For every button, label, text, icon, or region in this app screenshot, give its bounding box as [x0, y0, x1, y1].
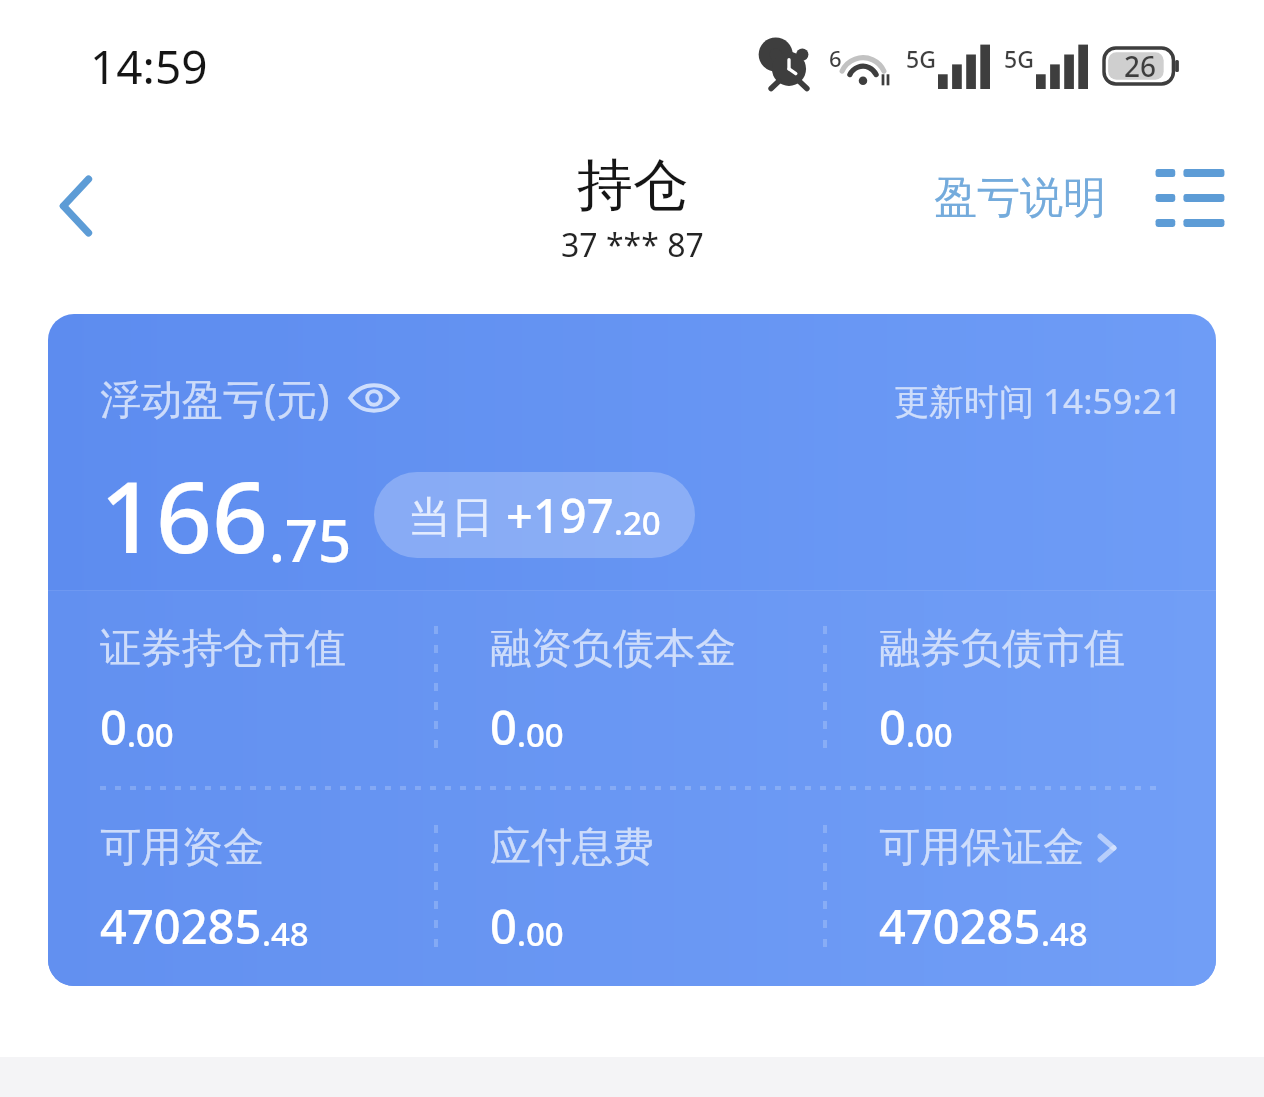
staticText: 更新时间 14:59:21: [894, 377, 1182, 425]
button[interactable]: 当日: [374, 472, 695, 558]
button[interactable]: List view: [1144, 152, 1236, 244]
staticText: 166: [100, 448, 269, 581]
staticText: 盈亏说明: [934, 171, 1106, 225]
button[interactable]: 可用保证金: [827, 790, 1216, 986]
staticText: 0: [100, 695, 127, 759]
staticText: 0: [879, 695, 906, 759]
staticText: 470285: [100, 894, 262, 958]
button[interactable]: Back: [30, 160, 122, 252]
staticText: 可用保证金: [879, 822, 1084, 874]
staticText: 5G: [906, 43, 936, 74]
staticText: .20: [614, 500, 661, 545]
button[interactable]: 证券持仓市值: [48, 591, 438, 786]
staticText: .00: [906, 712, 953, 757]
staticText: 5G: [1004, 43, 1034, 74]
button[interactable]: 可用资金: [48, 790, 438, 986]
staticText: 融券负债市值: [879, 623, 1125, 675]
staticText: .48: [262, 911, 309, 956]
staticText: 6: [829, 43, 842, 73]
staticText: 0: [490, 894, 517, 958]
staticText: .00: [127, 712, 174, 757]
staticText: .48: [1041, 911, 1088, 956]
staticText: .75: [269, 500, 352, 579]
staticText: 证券持仓市值: [100, 623, 346, 675]
button[interactable]: 融券负债市值: [827, 591, 1216, 786]
button[interactable]: 浮动盈亏(元): [48, 314, 1216, 986]
staticText: 融资负债本金: [490, 623, 736, 675]
staticText: 470285: [879, 894, 1041, 958]
staticText: +197: [506, 483, 614, 547]
staticText: 当日: [408, 486, 506, 545]
button[interactable]: 盈亏说明: [922, 159, 1118, 237]
staticText: 可用资金: [100, 822, 264, 874]
staticText: 应付息费: [490, 822, 654, 874]
staticText: 14:59: [90, 35, 208, 98]
staticText: 持仓: [577, 150, 689, 221]
button[interactable]: Toggle amount visibility: [346, 375, 402, 421]
staticText: 26: [1124, 47, 1157, 85]
staticText: 浮动盈亏(元): [100, 370, 330, 426]
staticText: .00: [517, 911, 564, 956]
button[interactable]: 应付息费: [438, 790, 827, 986]
staticText: 0: [490, 695, 517, 759]
button[interactable]: 融资负债本金: [438, 591, 827, 786]
staticText: 37 *** 87: [561, 223, 704, 267]
staticText: .00: [517, 712, 564, 757]
